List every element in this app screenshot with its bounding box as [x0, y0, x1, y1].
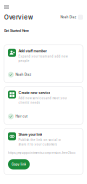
staticText: Overview — [4, 13, 33, 21]
staticText: Hair cut — [16, 115, 28, 118]
staticText: Add staff member — [18, 49, 46, 53]
button[interactable]: Copy link — [8, 159, 30, 169]
staticText: Get Started Here — [4, 29, 29, 33]
staticText: Noah Diaz — [16, 73, 32, 76]
staticText: Add new services and meet your clients' … — [18, 97, 67, 105]
button[interactable]: Menu — [3, 4, 10, 10]
staticText: Share your link — [18, 132, 42, 136]
staticText: Noah Diaz — [60, 15, 76, 19]
staticText: https://myappointments.com/version-free2… — [8, 151, 76, 155]
staticText: Create new service — [18, 91, 50, 95]
staticText: Expand your team and add new people — [18, 55, 67, 63]
staticText: Publish the link on social or share it t… — [18, 138, 61, 146]
staticText: Copy link — [11, 162, 26, 166]
